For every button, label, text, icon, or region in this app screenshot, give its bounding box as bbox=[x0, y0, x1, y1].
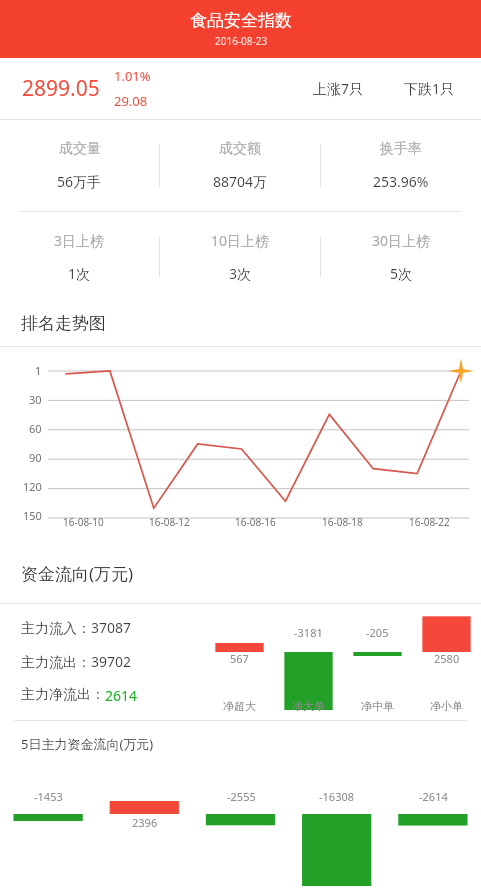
button[interactable]: 换手率 bbox=[321, 120, 481, 211]
staticText: 16-08-16 bbox=[235, 515, 276, 529]
button[interactable]: 成交量 bbox=[0, 120, 159, 211]
staticText: 上涨7只 bbox=[313, 79, 364, 98]
staticText: 567 bbox=[230, 651, 249, 666]
staticText: 88704万 bbox=[213, 172, 268, 191]
staticText: 主力净流出： bbox=[21, 686, 105, 704]
staticText: 换手率 bbox=[380, 140, 422, 158]
staticText: 2396 bbox=[132, 815, 158, 830]
staticText: 30日上榜 bbox=[372, 231, 431, 250]
staticText: 3次 bbox=[229, 264, 252, 283]
staticText: 120 bbox=[23, 479, 42, 494]
button[interactable]: -1453 bbox=[0, 766, 97, 889]
staticText: 下跌1只 bbox=[404, 79, 455, 98]
staticText: 60 bbox=[29, 421, 42, 436]
staticText: -205 bbox=[366, 625, 389, 640]
staticText: -1453 bbox=[34, 789, 63, 804]
staticText: 2016-08-23 bbox=[215, 34, 268, 48]
staticText: 主力流入：37087 bbox=[21, 618, 132, 637]
staticText: 排名走势图 bbox=[21, 313, 106, 334]
button[interactable]: -16308 bbox=[289, 766, 385, 889]
staticText: 5日主力资金流向(万元) bbox=[21, 735, 154, 753]
button[interactable]: -3181 bbox=[274, 604, 343, 720]
button[interactable]: 30日上榜 bbox=[321, 212, 481, 301]
staticText: -16308 bbox=[319, 789, 355, 804]
staticText: 1.01% bbox=[114, 67, 151, 85]
staticText: 10日上榜 bbox=[211, 231, 270, 250]
staticText: 253.96% bbox=[373, 172, 429, 191]
button[interactable]: 食品安全指数 2016-08-23 bbox=[0, 0, 481, 58]
staticText: 2614 bbox=[105, 686, 138, 705]
staticText: 56万手 bbox=[57, 172, 102, 191]
staticText: 150 bbox=[23, 508, 42, 523]
staticText: 成交量 bbox=[59, 140, 101, 158]
button[interactable]: -2614 bbox=[385, 766, 481, 889]
button[interactable]: -205 bbox=[343, 604, 412, 720]
staticText: 主力流出：39702 bbox=[21, 652, 132, 671]
staticText: -2555 bbox=[227, 789, 256, 804]
staticText: 净小单 bbox=[430, 699, 463, 713]
staticText: 净大单 bbox=[292, 699, 325, 713]
staticText: 成交额 bbox=[219, 140, 261, 158]
staticText: 5次 bbox=[390, 264, 413, 283]
staticText: 1 bbox=[35, 363, 42, 378]
staticText: 净超大 bbox=[223, 699, 256, 713]
staticText: 16-08-12 bbox=[149, 515, 190, 529]
staticText: 2899.05 bbox=[22, 74, 100, 103]
staticText: 16-08-18 bbox=[322, 515, 363, 529]
staticText: 3日上榜 bbox=[54, 231, 105, 250]
staticText: 净中单 bbox=[361, 699, 394, 713]
staticText: -2614 bbox=[419, 789, 448, 804]
button[interactable]: 2580 bbox=[412, 604, 481, 720]
staticText: 30 bbox=[29, 392, 42, 407]
button[interactable]: -2555 bbox=[193, 766, 289, 889]
button[interactable]: 成交额 bbox=[160, 120, 320, 211]
staticText: 16-08-10 bbox=[63, 515, 104, 529]
button[interactable]: 2899.05 bbox=[0, 58, 481, 119]
button[interactable]: 3日上榜 bbox=[0, 212, 159, 301]
button[interactable]: 567 bbox=[205, 604, 274, 720]
staticText: 1次 bbox=[68, 264, 91, 283]
staticText: -3181 bbox=[294, 625, 323, 640]
button[interactable]: 2396 bbox=[97, 766, 193, 889]
staticText: 2580 bbox=[434, 651, 460, 666]
staticText: 29.08 bbox=[114, 92, 148, 110]
staticText: 90 bbox=[29, 450, 42, 465]
staticText: 资金流向(万元) bbox=[21, 562, 134, 585]
staticText: 16-08-22 bbox=[409, 515, 450, 529]
staticText: 食品安全指数 bbox=[190, 10, 292, 31]
button[interactable]: 10日上榜 bbox=[160, 212, 320, 301]
